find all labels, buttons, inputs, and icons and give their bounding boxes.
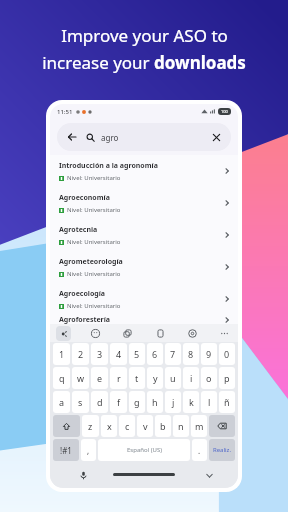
staticText: r (117, 372, 121, 384)
staticText: t (135, 372, 139, 384)
button[interactable]: Introducción a la agronomía (50, 155, 238, 187)
button[interactable]: 5 (129, 343, 145, 365)
button[interactable]: Backspace (209, 415, 235, 437)
staticText: n (178, 420, 184, 432)
staticText: Español (US) (127, 446, 162, 454)
staticText: Nivel: Universitario (67, 238, 121, 246)
button[interactable]: 7 (165, 343, 181, 365)
staticText: Nivel: Universitario (67, 174, 121, 182)
button[interactable]: u (165, 367, 181, 389)
staticText: Agrometeorología (59, 257, 123, 267)
staticText: v (143, 420, 148, 432)
button[interactable]: Voice input (76, 468, 90, 482)
button[interactable]: . (192, 439, 207, 461)
button[interactable]: k (183, 391, 199, 413)
staticText: Introducción a la agronomía (59, 161, 158, 171)
button[interactable]: 9 (201, 343, 217, 365)
staticText: q (59, 372, 65, 384)
button[interactable]: o (201, 367, 217, 389)
staticText: o (206, 372, 212, 384)
staticText: x (107, 420, 112, 432)
button[interactable]: e (91, 367, 108, 389)
button[interactable]: Shift (53, 415, 80, 437)
button[interactable]: !#1 (53, 439, 79, 461)
button[interactable]: b (155, 415, 171, 437)
staticText: c (125, 420, 130, 432)
staticText: 11:51 (57, 108, 73, 116)
button[interactable]: i (183, 367, 199, 389)
button[interactable]: Settings (185, 326, 200, 341)
staticText: agro (101, 132, 119, 143)
button[interactable]: 2 (72, 343, 89, 365)
staticText: f (117, 396, 121, 408)
staticText: 7 (170, 348, 176, 360)
staticText: Nivel: Universitario (67, 206, 121, 214)
staticText: 6 (152, 348, 158, 360)
staticText: ñ (224, 396, 230, 408)
button[interactable]: v (137, 415, 153, 437)
button[interactable]: j (165, 391, 181, 413)
button[interactable]: Assist (56, 326, 71, 341)
button[interactable]: 6 (147, 343, 163, 365)
button[interactable]: x (101, 415, 117, 437)
staticText: 0 (224, 348, 230, 360)
staticText: Agroforestería (59, 315, 111, 324)
button[interactable]: Agroforestería (50, 315, 238, 324)
button[interactable]: d (91, 391, 108, 413)
staticText: increase your downloads (42, 51, 246, 74)
button[interactable]: More (217, 326, 232, 341)
staticText: 4 (116, 348, 122, 360)
staticText: 1 (59, 348, 65, 360)
staticText: i (190, 372, 193, 384)
button[interactable]: 1 (53, 343, 70, 365)
staticText: 100 (221, 109, 228, 114)
staticText: Agrotecnia (59, 225, 98, 235)
button[interactable]: Español (US) (98, 439, 190, 461)
button[interactable]: s (72, 391, 89, 413)
button[interactable]: c (119, 415, 135, 437)
staticText: Nivel: Universitario (67, 302, 121, 310)
button[interactable]: r (110, 367, 127, 389)
button[interactable]: p (219, 367, 235, 389)
button[interactable]: l (201, 391, 217, 413)
button[interactable]: Emoji (88, 326, 103, 341)
staticText: p (224, 372, 230, 384)
staticText: j (172, 396, 175, 408)
button[interactable]: Back (65, 130, 79, 144)
button[interactable]: 3 (91, 343, 108, 365)
button[interactable]: 0 (219, 343, 235, 365)
staticText: k (189, 396, 194, 408)
button[interactable]: Clipboard (153, 326, 168, 341)
button[interactable]: 4 (110, 343, 127, 365)
button[interactable]: n (173, 415, 189, 437)
button[interactable]: t (129, 367, 145, 389)
button[interactable]: Clear (209, 130, 223, 144)
button[interactable]: Agrometeorología (50, 251, 238, 283)
button[interactable]: Realiz. (209, 439, 235, 461)
button[interactable]: w (72, 367, 89, 389)
staticText: Nivel: Universitario (67, 270, 121, 278)
button[interactable]: Back (57, 123, 231, 151)
button[interactable]: Agrotecnia (50, 219, 238, 251)
button[interactable]: , (81, 439, 96, 461)
button[interactable]: m (191, 415, 207, 437)
staticText: 5 (134, 348, 140, 360)
staticText: a (59, 396, 65, 408)
button[interactable]: f (110, 391, 127, 413)
button[interactable]: q (53, 367, 70, 389)
button[interactable]: Hide keyboard (202, 468, 216, 482)
button[interactable]: ñ (219, 391, 235, 413)
button[interactable]: GIF (120, 326, 135, 341)
button[interactable]: g (129, 391, 145, 413)
button[interactable]: Agroecología (50, 283, 238, 315)
button[interactable]: Agroeconomía (50, 187, 238, 219)
staticText: . (198, 445, 201, 456)
button[interactable]: a (53, 391, 70, 413)
staticText: y (153, 372, 158, 384)
staticText: u (170, 372, 176, 384)
button[interactable]: y (147, 367, 163, 389)
button[interactable]: 8 (183, 343, 199, 365)
staticText: Realiz. (213, 446, 232, 454)
button[interactable]: z (82, 415, 99, 437)
button[interactable]: h (147, 391, 163, 413)
